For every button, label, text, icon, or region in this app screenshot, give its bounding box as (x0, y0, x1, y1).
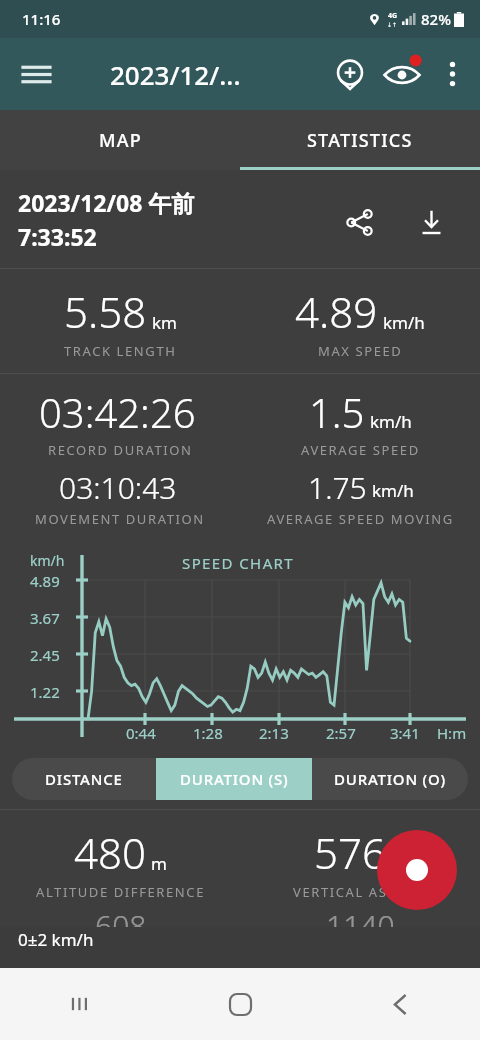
button[interactable]: Download (408, 199, 454, 245)
button[interactable]: MAP (0, 110, 240, 170)
button[interactable]: DURATION (S) (156, 758, 312, 800)
staticText: 7:33:52 (18, 221, 97, 252)
staticText: AVERAGE SPEED (301, 441, 420, 459)
staticText: 576 (314, 824, 386, 881)
staticText: MAP (99, 128, 142, 153)
staticText: 0:44 (126, 723, 156, 743)
staticText: 03:42:26 (39, 385, 196, 439)
button[interactable]: DURATION (O) (312, 758, 468, 800)
staticText: m (151, 852, 167, 875)
staticText: AVERAGE SPEED MOVING (267, 510, 454, 528)
staticText: STATISTICS (307, 128, 413, 153)
staticText: m (391, 852, 407, 875)
staticText: 2023/12/08 午前 (18, 187, 195, 218)
staticText: MAX SPEED (318, 342, 403, 360)
staticText: 1140 (326, 905, 395, 927)
staticText: km (152, 311, 177, 334)
staticText: 1:28 (193, 723, 223, 743)
staticText: 4G (388, 11, 398, 21)
staticText: 82% (421, 9, 451, 29)
button[interactable]: Recents (0, 968, 160, 1040)
staticText: 608 (95, 905, 147, 927)
button[interactable]: Visibility (376, 48, 428, 100)
staticText: VERTICAL ASCENT (293, 883, 427, 901)
staticText: DURATION (O) (334, 769, 447, 789)
staticText: 3.67 (30, 608, 60, 628)
button[interactable]: STATISTICS (240, 110, 480, 170)
staticText: 1.5 (309, 385, 365, 439)
button[interactable]: Share (336, 199, 382, 245)
staticText: H:m (437, 723, 467, 743)
staticText: 3:41 (390, 723, 420, 743)
staticText: 5.58 (64, 283, 147, 340)
button[interactable]: Back (320, 968, 480, 1040)
staticText: 2.45 (30, 645, 60, 665)
staticText: 11:16 (22, 9, 61, 29)
button[interactable]: Menu (12, 50, 60, 98)
staticText: DISTANCE (45, 769, 123, 789)
staticText: 03:10:43 (59, 467, 177, 508)
staticText: RECORD DURATION (48, 441, 193, 459)
button[interactable]: Record (377, 830, 457, 910)
staticText: km/h (372, 479, 414, 502)
staticText: 4.89 (295, 283, 378, 340)
staticText: ALTITUDE DIFFERENCE (36, 883, 205, 901)
staticText: 2023/12/... (110, 57, 241, 92)
staticText: 0±2 km/h (18, 928, 94, 951)
staticText: TRACK LENGTH (64, 342, 177, 360)
staticText: km/h (30, 551, 65, 570)
staticText: DURATION (S) (180, 769, 289, 789)
staticText: 4.89 (30, 571, 60, 591)
staticText: 2:57 (326, 723, 356, 743)
button[interactable]: More options (428, 50, 476, 98)
button[interactable]: DISTANCE (12, 758, 156, 800)
staticText: SPEED CHART (182, 553, 295, 573)
staticText: 2:13 (259, 723, 289, 743)
staticText: 480 (74, 824, 146, 881)
staticText: 1.22 (30, 682, 60, 702)
staticText: 1.75 (308, 467, 367, 508)
staticText: MOVEMENT DURATION (35, 510, 205, 528)
staticText: km/h (370, 410, 412, 433)
button[interactable]: Add waypoint (324, 48, 376, 100)
staticText: km/h (383, 311, 425, 334)
staticText: ↓↑ (387, 21, 398, 28)
button[interactable]: Home (160, 968, 320, 1040)
